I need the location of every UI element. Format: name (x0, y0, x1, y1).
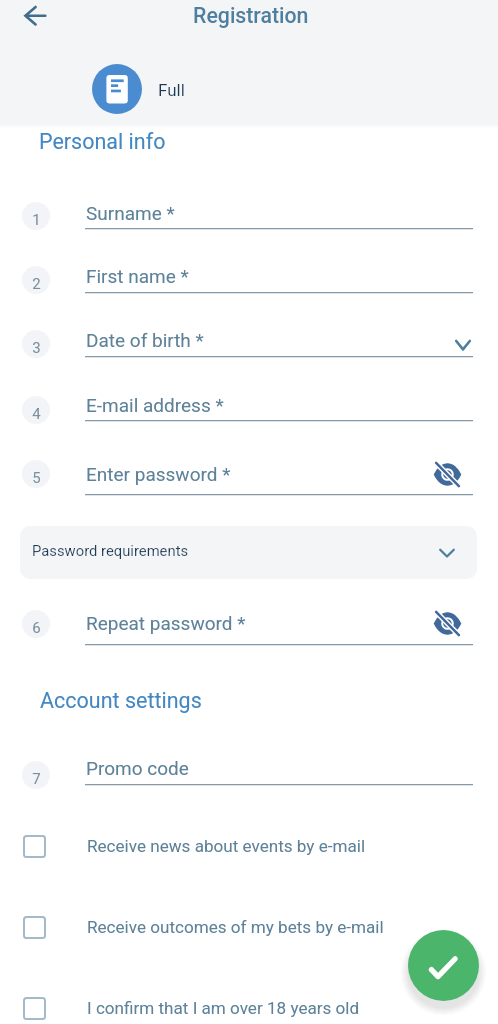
button[interactable]: Confirm registration (408, 930, 479, 1001)
button[interactable] (92, 64, 212, 114)
staticText: Enter password * (86, 463, 231, 485)
staticText: Full (158, 80, 185, 100)
button[interactable]: Receive outcomes of my bets by e-mail (10, 905, 476, 949)
button[interactable]: E-mail address * (85, 388, 473, 422)
button[interactable] (20, 526, 477, 579)
staticText: Password requirements (32, 542, 189, 559)
staticText: Registration (193, 3, 309, 28)
staticText: Receive news about events by e-mail (87, 836, 366, 856)
button[interactable]: Select date (449, 331, 477, 359)
staticText: First name * (86, 265, 189, 287)
staticText: Repeat password * (86, 612, 246, 634)
button[interactable]: Repeat password * (85, 612, 473, 646)
staticText: Receive outcomes of my bets by e-mail (87, 917, 384, 937)
staticText: 3 (32, 339, 41, 357)
staticText: Account settings (40, 688, 202, 713)
staticText: E-mail address * (86, 394, 224, 416)
button[interactable]: Receive news about events by e-mail (10, 824, 476, 868)
staticText: Personal info (39, 129, 166, 154)
button[interactable]: Date of birth * (85, 324, 473, 358)
staticText: 2 (32, 275, 41, 293)
staticText: 1 (32, 211, 41, 229)
button[interactable]: Show password (431, 458, 463, 490)
button[interactable]: Show password (431, 607, 463, 639)
staticText: I confirm that I am over 18 years old (87, 998, 360, 1018)
button[interactable]: First name * (85, 260, 473, 294)
staticText: 6 (32, 619, 41, 637)
button[interactable]: Surname * (85, 196, 473, 230)
staticText: 4 (32, 405, 41, 423)
staticText: Promo code (86, 757, 189, 779)
staticText: Date of birth * (86, 329, 204, 351)
staticText: 5 (32, 469, 41, 487)
button[interactable]: I confirm that I am over 18 years old (10, 986, 476, 1024)
staticText: Surname * (86, 202, 175, 224)
staticText: 7 (32, 770, 41, 788)
button[interactable]: Enter password * (85, 462, 473, 496)
button[interactable]: Back (13, 0, 49, 36)
button[interactable]: Promo code (85, 752, 473, 786)
